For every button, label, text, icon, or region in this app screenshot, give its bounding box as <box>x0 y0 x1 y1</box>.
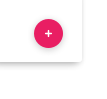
button[interactable]: Add <box>34 19 63 48</box>
